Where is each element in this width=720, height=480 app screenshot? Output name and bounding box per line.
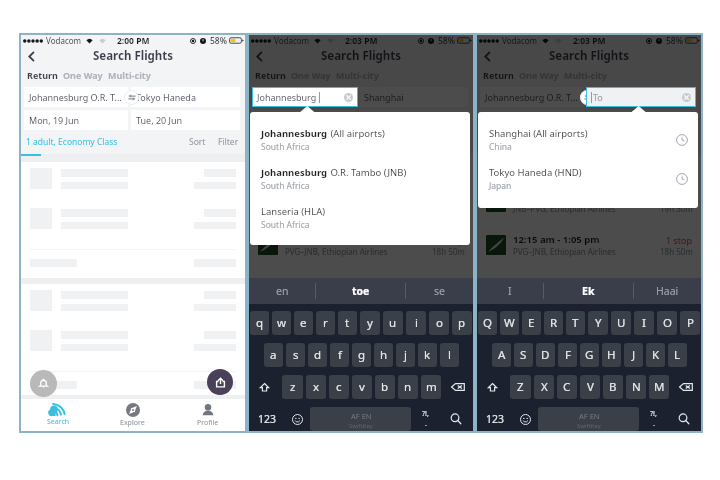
button[interactable]: Multi-city — [336, 69, 379, 81]
button[interactable]: Tue, 20 Jun — [131, 110, 240, 130]
button[interactable]: AF EN — [310, 407, 411, 431]
button[interactable]: r — [316, 311, 335, 335]
button[interactable]: Explore — [95, 399, 170, 431]
button[interactable]: g — [352, 343, 371, 367]
button[interactable]: K — [646, 343, 665, 367]
button[interactable]: f — [330, 343, 349, 367]
button[interactable]: J — [624, 343, 643, 367]
button[interactable]: One Way — [291, 69, 331, 81]
button[interactable]: Johannesburg — [252, 87, 356, 107]
button[interactable]: F — [558, 343, 577, 367]
button[interactable]: P — [680, 311, 700, 335]
button[interactable]: M — [649, 375, 669, 399]
button[interactable]: A — [492, 343, 511, 367]
button[interactable]: Return — [255, 69, 286, 81]
button[interactable]: toe — [316, 278, 405, 304]
button[interactable]: Mon, 19 Jun — [480, 110, 584, 130]
button[interactable]: m — [421, 375, 441, 399]
button[interactable]: d — [308, 343, 327, 367]
button[interactable]: en — [249, 278, 315, 304]
button[interactable]: Swap origin and destination — [124, 90, 139, 105]
button[interactable]: Share — [207, 369, 233, 395]
button[interactable]: Tokyo Haneda (HND) — [489, 166, 688, 192]
button[interactable]: N — [626, 375, 646, 399]
button[interactable]: Backspace — [672, 375, 700, 399]
button[interactable]: Mon, 19 Jun — [252, 110, 356, 130]
button[interactable]: To — [586, 87, 696, 107]
button[interactable]: E — [522, 311, 541, 335]
button[interactable]: W — [500, 311, 519, 335]
button[interactable]: h — [374, 343, 393, 367]
button[interactable]: Shift — [250, 375, 279, 399]
button[interactable]: q — [250, 311, 269, 335]
button[interactable]: x — [306, 375, 326, 399]
button[interactable]: X — [534, 375, 554, 399]
button[interactable]: 1 adult, Economy Class — [254, 136, 346, 148]
button[interactable]: Search — [21, 399, 95, 431]
button[interactable]: l — [440, 343, 459, 367]
button[interactable]: Swap origin and destination — [580, 90, 595, 105]
button[interactable]: c — [329, 375, 349, 399]
button[interactable]: Search — [439, 407, 472, 431]
button[interactable]: T — [566, 311, 585, 335]
button[interactable]: Z — [510, 375, 531, 399]
button[interactable]: Emoji — [513, 407, 538, 431]
button[interactable]: t — [338, 311, 357, 335]
button[interactable]: n — [398, 375, 418, 399]
button[interactable]: y — [360, 311, 380, 335]
button[interactable]: j — [396, 343, 415, 367]
button[interactable]: I — [634, 311, 654, 335]
button[interactable]: Shanghai — [359, 87, 468, 107]
button[interactable]: Tue, 20 Jun — [587, 110, 696, 130]
button[interactable]: Multi-city — [108, 69, 151, 81]
button[interactable]: 12:15 am - 1:05 pm — [249, 233, 473, 257]
button[interactable]: a — [264, 343, 283, 367]
button[interactable]: Shanghai (All airports) — [489, 127, 688, 153]
button[interactable]: Back — [23, 48, 39, 64]
button[interactable]: Lanseria (HLA) — [261, 205, 460, 231]
button[interactable]: u — [383, 311, 403, 335]
button[interactable]: Multi-city — [564, 69, 607, 81]
button[interactable]: Shift — [478, 375, 507, 399]
button[interactable]: Return — [483, 69, 514, 81]
button[interactable]: Johannesburg — [261, 166, 460, 192]
button[interactable]: Tokyo Haneda — [131, 87, 240, 107]
button[interactable]: ?!, — [639, 407, 667, 431]
button[interactable]: One Way — [519, 69, 559, 81]
button[interactable]: C — [557, 375, 577, 399]
button[interactable]: U — [611, 311, 631, 335]
button[interactable]: ?!, — [411, 407, 439, 431]
button[interactable]: 12:15 am - 1:05 pm — [477, 233, 701, 257]
button[interactable]: 10:55 am - 9:25 pm — [477, 190, 701, 214]
button[interactable]: Mon, 19 Jun — [24, 110, 128, 130]
button[interactable]: Emoji — [285, 407, 310, 431]
button[interactable]: S — [514, 343, 533, 367]
button[interactable]: R — [544, 311, 563, 335]
button[interactable]: Sort — [189, 136, 206, 148]
button[interactable]: H — [602, 343, 621, 367]
button[interactable]: se — [406, 278, 473, 304]
button[interactable]: AF EN — [538, 407, 639, 431]
button[interactable]: Back — [479, 48, 495, 64]
button[interactable]: e — [294, 311, 313, 335]
button[interactable]: 123 — [478, 407, 513, 431]
button[interactable]: s — [286, 343, 305, 367]
button[interactable]: Q — [478, 311, 497, 335]
button[interactable]: Search — [667, 407, 700, 431]
button[interactable]: v — [352, 375, 372, 399]
button[interactable]: b — [375, 375, 395, 399]
button[interactable]: G — [580, 343, 599, 367]
button[interactable]: w — [272, 311, 291, 335]
button[interactable]: To — [587, 87, 696, 107]
button[interactable]: 123 — [250, 407, 285, 431]
button[interactable]: Tue, 20 Jun — [359, 110, 468, 130]
button[interactable]: Johannesburg — [252, 87, 358, 107]
button[interactable]: Johannesburg — [261, 127, 460, 153]
button[interactable]: Return — [27, 69, 58, 81]
button[interactable]: Filter — [674, 136, 695, 148]
button[interactable]: Filter — [218, 136, 239, 148]
button[interactable]: D — [536, 343, 555, 367]
button[interactable]: O — [657, 311, 677, 335]
